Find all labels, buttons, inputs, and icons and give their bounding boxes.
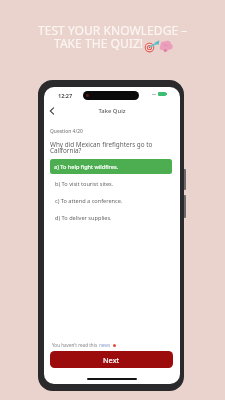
staticText: b) To visit tourist sites. xyxy=(55,180,114,188)
staticText: You haven't read this xyxy=(52,342,99,348)
button[interactable]: c) To attend a conference. xyxy=(50,193,172,208)
staticText: 12:27 xyxy=(58,92,73,99)
staticText: a) To help fight wildfires. xyxy=(54,163,119,171)
staticText: Take Quiz xyxy=(44,107,180,115)
button[interactable]: Next xyxy=(50,351,173,368)
staticText: Question 4/20 xyxy=(50,128,83,135)
staticText: TAKE THE QUIZ! xyxy=(54,35,144,51)
staticText: TEST YOUR KNOWLEDGE – xyxy=(38,22,188,38)
staticText: news xyxy=(99,342,111,348)
staticText: Why did Mexican firefighters go to Calif… xyxy=(50,140,154,155)
button[interactable]: Back xyxy=(45,104,59,118)
staticText: Next xyxy=(103,355,120,365)
staticText: c) To attend a conference. xyxy=(55,197,123,205)
button[interactable]: b) To visit tourist sites. xyxy=(50,176,172,191)
button[interactable]: d) To deliver supplies. xyxy=(50,210,172,225)
staticText: d) To deliver supplies. xyxy=(55,214,112,222)
button[interactable]: a) To help fight wildfires. xyxy=(50,159,172,174)
